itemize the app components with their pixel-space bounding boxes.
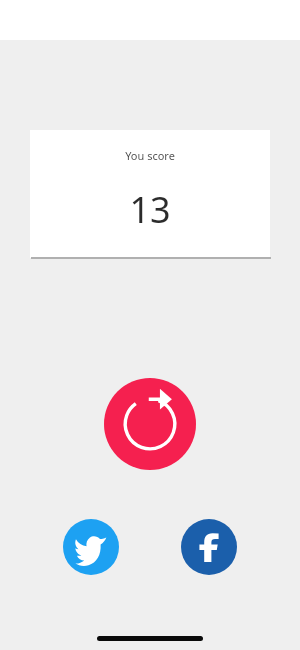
staticText: You score [125, 148, 175, 163]
button[interactable]: Share on Twitter [63, 519, 119, 575]
staticText: 13 [129, 185, 171, 234]
button[interactable]: You score [30, 130, 270, 258]
button[interactable]: Replay [104, 378, 196, 470]
button[interactable]: Share on Facebook [181, 519, 237, 575]
